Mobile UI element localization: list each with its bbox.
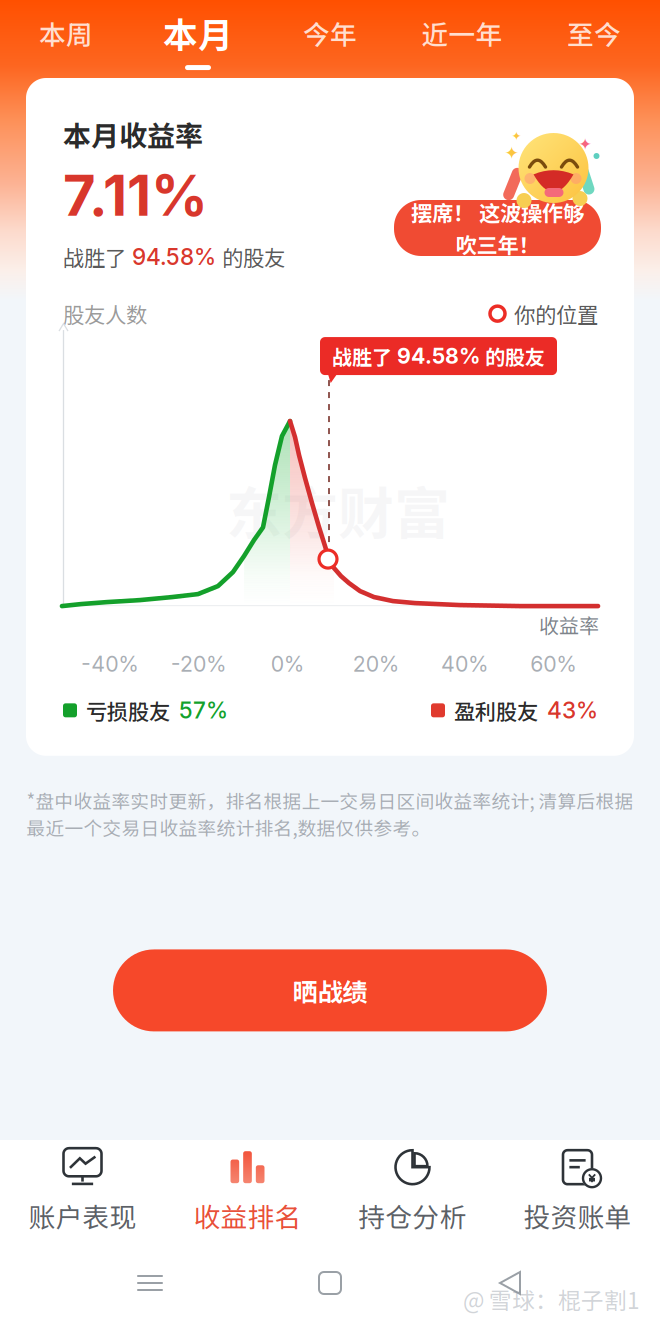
button[interactable]: Recents: [120, 1261, 180, 1305]
staticText: -20%: [171, 651, 227, 677]
button[interactable]: 今年: [264, 0, 396, 78]
staticText: 40%: [441, 651, 489, 677]
staticText: ✦: [504, 143, 519, 163]
button[interactable]: 账户表现: [0, 1147, 165, 1235]
staticText: -40%: [81, 651, 139, 677]
staticText: 94.58%: [126, 243, 222, 270]
staticText: ✦: [511, 129, 521, 143]
staticText: 吹三年！: [455, 228, 539, 259]
staticText: 收益率: [539, 610, 599, 639]
staticText: 的股友: [222, 241, 285, 272]
button[interactable]: 持仓分析: [330, 1147, 495, 1235]
staticText: 94.58%: [392, 343, 485, 369]
staticText: 摆席！ 这波操作够: [411, 197, 584, 227]
staticText: 57%: [179, 697, 228, 724]
staticText: 0%: [271, 651, 305, 677]
button[interactable]: 本周: [0, 0, 132, 78]
staticText: 亏损股友: [86, 695, 170, 726]
staticText: 投资账单: [523, 1196, 631, 1235]
staticText: 本月: [163, 8, 233, 58]
button[interactable]: 至今: [528, 0, 660, 78]
staticText: 7.11%: [63, 161, 208, 229]
staticText: 的股友: [485, 342, 545, 371]
staticText: 你的位置: [514, 298, 598, 329]
staticText: 持仓分析: [358, 1196, 466, 1235]
staticText: 本周: [39, 14, 93, 52]
staticText: 至今: [567, 14, 621, 52]
button[interactable]: 晒战绩: [113, 949, 547, 1031]
staticText: 60%: [530, 651, 577, 677]
staticText: 盈利股友: [454, 695, 538, 726]
button[interactable]: Home: [300, 1261, 360, 1305]
staticText: 晒战绩: [292, 972, 367, 1009]
staticText: ✦: [578, 135, 591, 154]
staticText: 账户表现: [28, 1196, 136, 1235]
staticText: 东方财富: [226, 469, 450, 550]
staticText: @ 雪球：棍子割1: [463, 1283, 640, 1315]
button[interactable]: 本月: [132, 0, 264, 78]
button[interactable]: 近一年: [396, 0, 528, 78]
staticText: *盘中收益率实时更新，排名根据上一交易日区间收益率统计; 清算后根据最近一个交易…: [26, 787, 633, 841]
staticText: 近一年: [421, 14, 502, 52]
button[interactable]: Back: [480, 1261, 540, 1305]
staticText: 本月收益率: [63, 114, 203, 154]
staticText: 战胜了: [332, 342, 392, 371]
staticText: 收益排名: [193, 1196, 301, 1235]
button[interactable]: 收益排名: [165, 1147, 330, 1235]
staticText: 股友人数: [63, 298, 147, 329]
button[interactable]: 投资账单: [495, 1147, 660, 1235]
staticText: 43%: [547, 697, 598, 724]
staticText: 战胜了: [63, 241, 126, 272]
staticText: 今年: [303, 14, 357, 52]
staticText: 20%: [353, 651, 400, 677]
